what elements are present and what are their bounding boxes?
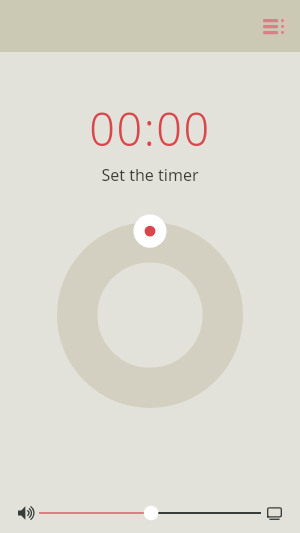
staticText: 00:00 — [89, 98, 211, 159]
button[interactable]: Presets — [256, 9, 290, 43]
button[interactable]: Cast — [261, 500, 287, 526]
button[interactable]: Timer dial — [57, 222, 243, 408]
button[interactable]: Volume — [13, 500, 39, 526]
staticText: Set the timer — [101, 164, 199, 186]
button[interactable]: Volume slider — [39, 496, 261, 530]
